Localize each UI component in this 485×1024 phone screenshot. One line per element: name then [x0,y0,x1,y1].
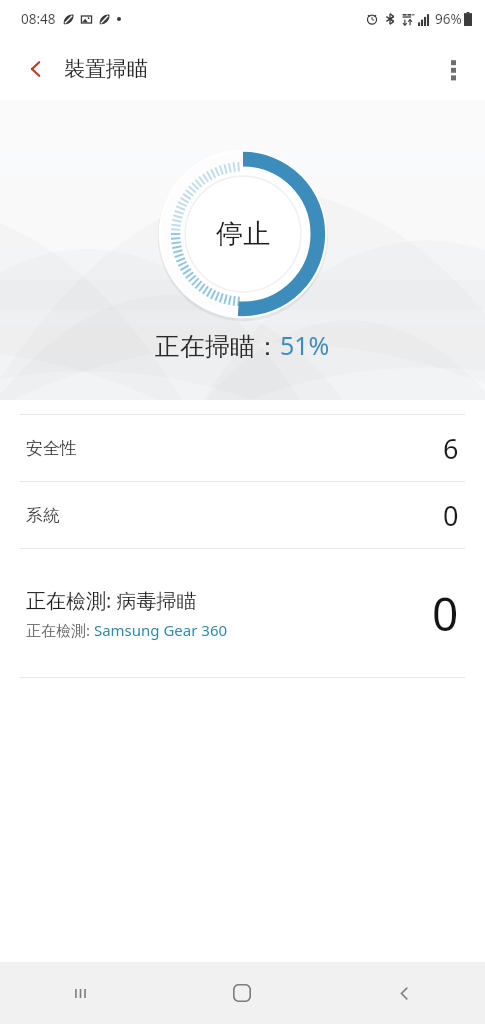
button[interactable]: Back [14,47,58,91]
staticText: 正在檢測: Samsung Gear 360 [26,620,228,640]
staticText: 08:48 [21,10,56,28]
staticText: 系統 [26,505,60,526]
button[interactable]: 系統 [0,482,485,548]
button[interactable]: Home [161,962,323,1024]
button[interactable]: More options [431,47,475,91]
button[interactable]: Stop scanning [157,148,329,320]
staticText: 安全性 [26,438,77,459]
staticText: 0 [443,497,459,534]
staticText: 0 [432,582,459,645]
button[interactable]: 安全性 [0,415,485,481]
staticText: 正在掃瞄：51% [155,328,330,362]
button[interactable]: Recent apps [0,962,161,1024]
staticText: 裝置掃瞄 [64,56,148,82]
button[interactable]: Back [323,962,485,1024]
staticText: 停止 [216,217,270,251]
staticText: 6 [443,430,459,467]
button[interactable]: 正在檢測: 病毒掃瞄 [0,549,485,677]
staticText: 正在檢測: 病毒掃瞄 [26,587,197,614]
staticText: 96% [435,10,462,28]
